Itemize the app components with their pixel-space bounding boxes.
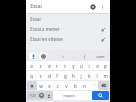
button[interactable]: b [71,81,80,90]
staticText: u [80,63,83,69]
button[interactable]: Essai a mener [26,24,110,34]
staticText: c [56,83,59,89]
staticText: ' [93,83,95,89]
staticText: s [39,73,42,79]
button[interactable]: s [36,71,45,80]
staticText: . [87,93,89,99]
staticText: j' [84,54,86,59]
button[interactable]: g [61,71,69,80]
button[interactable]: ' [89,81,98,90]
button[interactable]: c [53,81,62,90]
button[interactable]: espace [53,91,84,100]
staticText: i [62,54,64,59]
button[interactable]: e [45,61,53,70]
button[interactable]: o [93,61,101,70]
button[interactable]: a [27,61,36,70]
button[interactable]: Emoji [37,91,45,100]
button[interactable]: Search [92,91,109,100]
button[interactable]: x [45,81,53,90]
staticText: espace [63,93,75,98]
button[interactable]: t [61,61,69,70]
button[interactable]: . [84,91,92,100]
button[interactable]: q [27,71,36,80]
button[interactable]: Essai [30,3,88,10]
staticText: r [56,63,58,69]
staticText: Essai a mener [30,26,60,32]
button[interactable]: Shift [27,81,37,90]
button[interactable]: Essai en vitesse [26,34,110,44]
button[interactable]: Voice typing [45,91,53,100]
button[interactable]: k [85,71,93,80]
button[interactable]: u [77,61,85,70]
staticText: g [64,73,67,79]
staticText: t [64,63,66,69]
button[interactable]: z [36,61,45,70]
button[interactable]: j [77,71,85,80]
button[interactable]: Stickers [39,52,47,60]
button[interactable]: d [45,71,53,80]
staticText: m [103,73,108,79]
button[interactable]: l [93,71,101,80]
button[interactable]: w [37,81,45,90]
button[interactable]: i [85,61,93,70]
staticText: h [72,73,75,79]
button[interactable]: y [69,61,77,70]
staticText: e [48,63,51,69]
staticText: k [88,73,91,79]
staticText: d [48,73,51,79]
button[interactable]: More options [98,3,106,11]
staticText: - [73,54,75,59]
button[interactable]: Essai [26,14,110,24]
staticText: v [65,83,68,89]
staticText: Essai [30,3,42,10]
button[interactable]: n [80,81,89,90]
staticText: j [80,73,82,79]
staticText: q [30,73,33,79]
button[interactable]: f [53,71,61,80]
button[interactable]: m [101,71,109,80]
staticText: n [83,83,86,89]
staticText: ?123 [29,94,36,98]
staticText: i [88,63,90,69]
staticText: f [56,73,58,79]
staticText: .com [95,54,105,59]
staticText: p [104,63,107,69]
staticText: w [39,83,43,89]
button[interactable]: Settings [88,2,97,11]
staticText: z [39,63,42,69]
staticText: a [30,63,33,69]
button[interactable]: Backspace [98,81,109,90]
button[interactable]: Voice input [29,52,37,60]
staticText: y [72,63,75,69]
button[interactable]: h [69,71,77,80]
staticText: Essai en vitesse [30,36,63,42]
button[interactable]: v [62,81,71,90]
staticText: l [96,73,98,79]
button[interactable]: p [101,61,109,70]
button[interactable]: r [53,61,61,70]
staticText: o [96,63,99,69]
staticText: Essai [30,16,41,22]
staticText: b [74,83,77,89]
staticText: x [48,83,51,89]
button[interactable]: ?123 [27,91,37,100]
